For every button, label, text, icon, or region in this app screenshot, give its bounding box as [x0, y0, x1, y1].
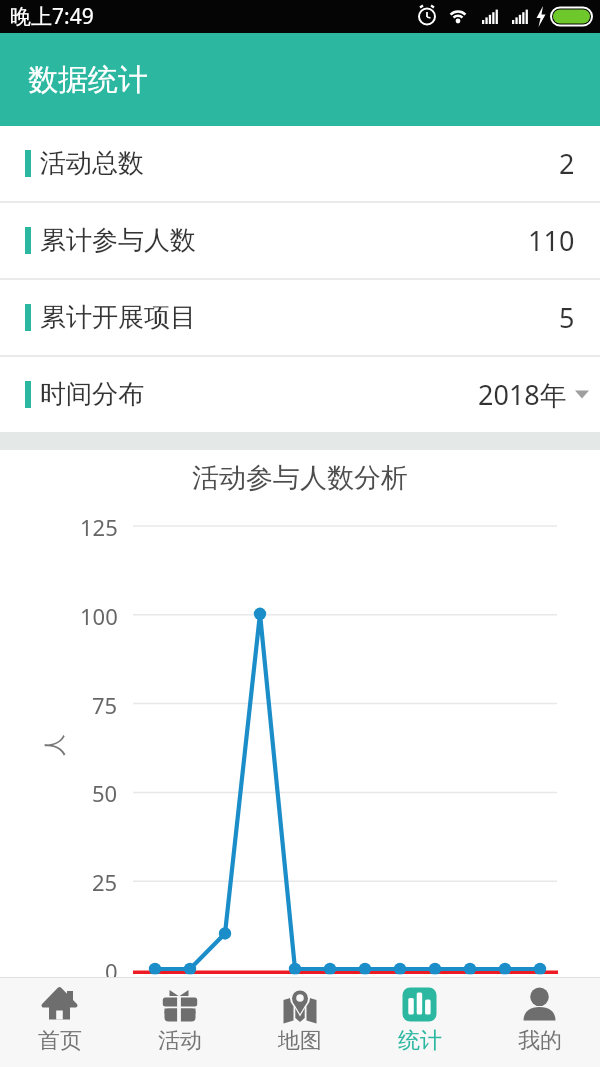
staticText: 110	[528, 222, 575, 259]
button[interactable]: 时间分布	[0, 357, 600, 432]
button[interactable]: 活动	[120, 978, 240, 1067]
staticText: 活动参与人数分析	[192, 461, 408, 495]
staticText: 累计参与人数	[40, 224, 196, 257]
staticText: 统计	[398, 1027, 442, 1055]
staticText: 晚上7:49	[10, 2, 94, 31]
staticText: 125	[80, 512, 118, 540]
staticText: 活动	[158, 1027, 202, 1055]
staticText: 首页	[38, 1027, 82, 1055]
staticText: 100	[80, 601, 118, 629]
staticText: 活动总数	[40, 147, 144, 180]
staticText: 25	[92, 867, 118, 895]
button[interactable]: 首页	[0, 978, 120, 1067]
button[interactable]: 我的	[480, 978, 600, 1067]
staticText: 2	[559, 145, 575, 182]
button[interactable]: 累计开展项目	[0, 280, 600, 355]
staticText: 地图	[278, 1027, 322, 1055]
staticText: 时间分布	[40, 378, 144, 411]
button[interactable]: 2018年	[478, 376, 589, 413]
button[interactable]: 活动总数	[0, 126, 600, 201]
button[interactable]: 地图	[240, 978, 360, 1067]
staticText: 累计开展项目	[40, 301, 196, 334]
staticText: 50	[92, 778, 118, 806]
staticText: 0	[105, 956, 118, 984]
staticText: 人	[41, 734, 69, 756]
staticText: 2018年	[478, 376, 567, 413]
staticText: 我的	[518, 1027, 562, 1055]
staticText: 75	[92, 690, 118, 718]
button[interactable]: 累计参与人数	[0, 203, 600, 278]
button[interactable]: 统计	[360, 978, 480, 1067]
staticText: 5	[559, 299, 575, 336]
staticText: 数据统计	[28, 61, 148, 99]
